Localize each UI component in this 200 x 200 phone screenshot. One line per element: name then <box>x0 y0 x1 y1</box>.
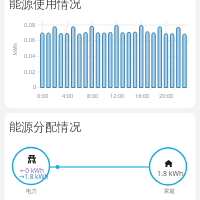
staticText: →1.8 kWh <box>19 172 49 181</box>
staticText: 0.06 <box>24 36 36 44</box>
staticText: 0.04 <box>24 52 36 60</box>
staticText: 1.8 kWh <box>157 169 184 179</box>
staticText: 0.02 <box>24 68 36 76</box>
staticText: kWh <box>11 43 19 55</box>
staticText: 家庭 <box>164 188 175 195</box>
staticText: 20:00 <box>159 92 174 100</box>
staticText: 能源分配情况 <box>9 119 81 134</box>
staticText: 0.08 <box>24 21 36 29</box>
staticText: 16:00 <box>135 92 150 100</box>
staticText: 0 <box>33 83 37 91</box>
staticText: ←0 kWh <box>20 166 44 175</box>
staticText: 电力 <box>26 188 37 195</box>
staticText: 8:00 <box>87 92 99 100</box>
button[interactable] <box>5 113 196 200</box>
staticText: 4:00 <box>62 92 74 100</box>
staticText: 0:00 <box>37 92 49 100</box>
staticText: 12:00 <box>110 92 125 100</box>
staticText: 能源使用情况 <box>9 0 81 11</box>
button[interactable] <box>5 0 196 108</box>
